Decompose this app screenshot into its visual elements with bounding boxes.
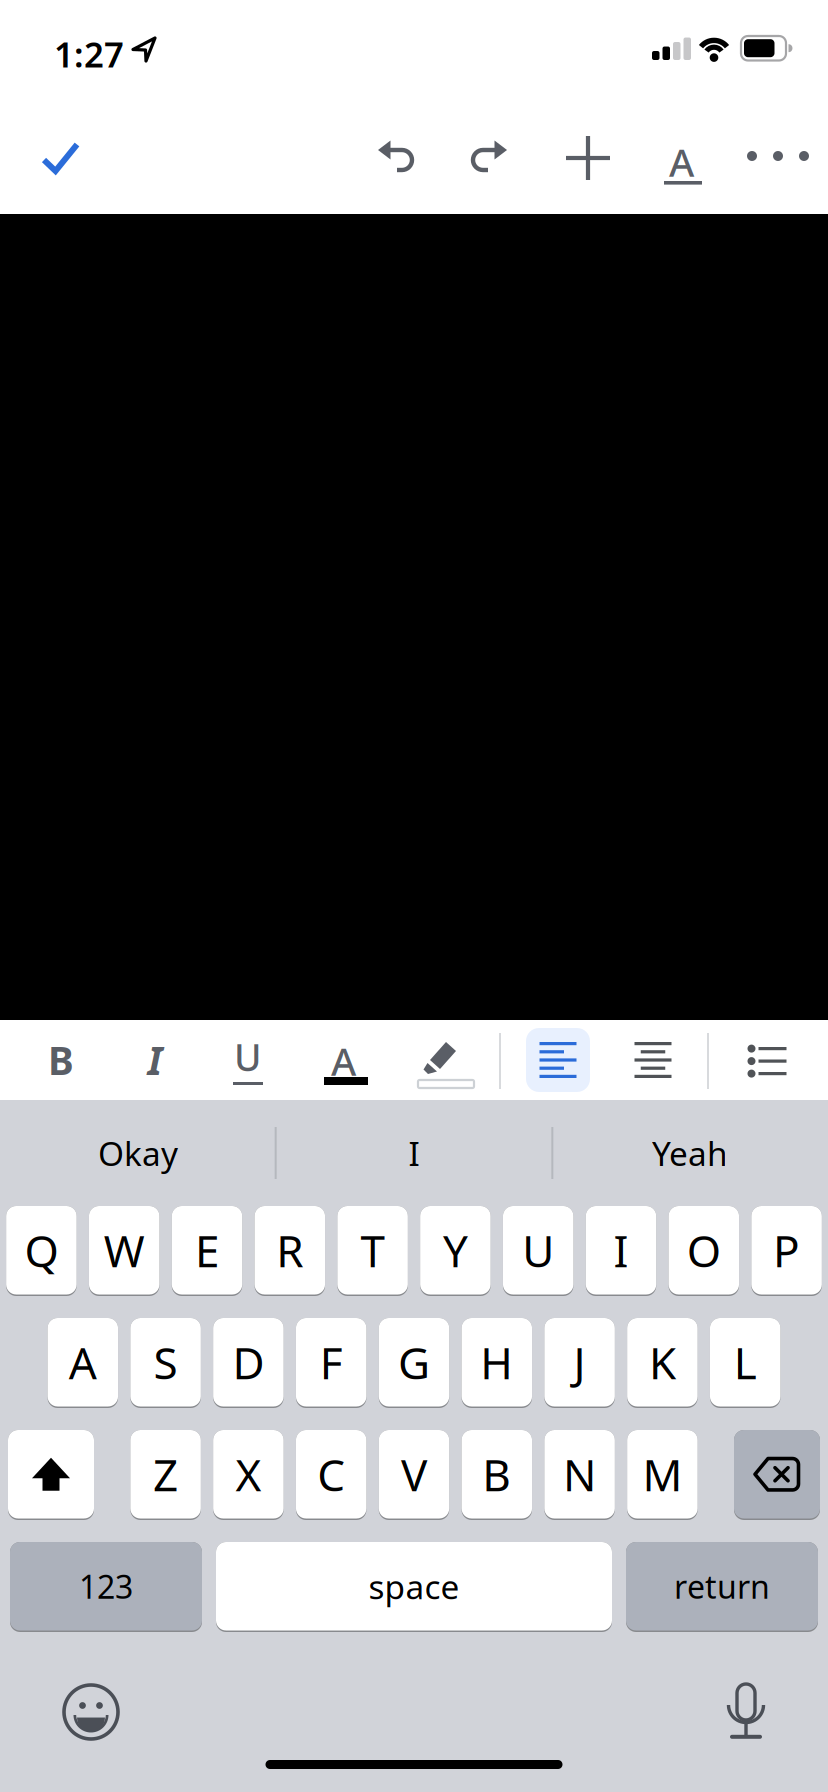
- button[interactable]: O: [668, 1206, 739, 1296]
- button[interactable]: return: [626, 1542, 818, 1632]
- button[interactable]: Text color: [316, 1030, 376, 1090]
- button[interactable]: F: [296, 1318, 366, 1408]
- staticText: Okay: [98, 1131, 178, 1175]
- staticText: B: [482, 1445, 511, 1503]
- button[interactable]: Undo: [372, 134, 420, 182]
- button[interactable]: Emoji: [63, 1684, 119, 1740]
- button[interactable]: Okay: [0, 1105, 276, 1201]
- staticText: 123: [79, 1565, 133, 1607]
- staticText: C: [317, 1445, 345, 1503]
- button[interactable]: K: [627, 1318, 698, 1408]
- staticText: D: [232, 1333, 264, 1391]
- staticText: G: [398, 1333, 430, 1391]
- button[interactable]: D: [213, 1318, 284, 1408]
- staticText: V: [401, 1445, 427, 1503]
- staticText: X: [235, 1445, 261, 1503]
- button[interactable]: Redo: [465, 134, 513, 182]
- button[interactable]: Shift: [8, 1430, 94, 1520]
- staticText: J: [574, 1333, 586, 1391]
- button[interactable]: Done: [36, 134, 84, 182]
- button[interactable]: J: [544, 1318, 615, 1408]
- button[interactable]: I: [276, 1105, 552, 1201]
- button[interactable]: Yeah: [552, 1105, 828, 1201]
- staticText: W: [104, 1221, 145, 1279]
- button[interactable]: C: [296, 1430, 366, 1520]
- button[interactable]: G: [379, 1318, 449, 1408]
- staticText: A: [69, 1333, 97, 1391]
- button[interactable]: Highlight color: [416, 1030, 476, 1090]
- button[interactable]: V: [379, 1430, 449, 1520]
- staticText: K: [649, 1333, 676, 1391]
- staticText: Y: [443, 1221, 468, 1279]
- staticText: U: [234, 1032, 262, 1082]
- staticText: 1:27: [54, 31, 124, 77]
- button[interactable]: S: [130, 1318, 201, 1408]
- button[interactable]: 123: [10, 1542, 202, 1632]
- button[interactable]: space: [216, 1542, 612, 1632]
- staticText: S: [154, 1333, 178, 1391]
- staticText: O: [687, 1221, 721, 1279]
- button[interactable]: Bulleted list: [734, 1030, 794, 1090]
- button[interactable]: Align center: [621, 1028, 685, 1092]
- button[interactable]: X: [213, 1430, 284, 1520]
- button[interactable]: More options: [747, 151, 809, 161]
- staticText: F: [320, 1333, 343, 1391]
- staticText: I: [613, 1221, 628, 1279]
- button[interactable]: Format text: [659, 130, 707, 186]
- staticText: L: [734, 1333, 757, 1391]
- button[interactable]: P: [751, 1206, 822, 1296]
- staticText: B: [48, 1034, 74, 1086]
- staticText: Z: [153, 1445, 178, 1503]
- staticText: R: [276, 1221, 303, 1279]
- staticText: M: [642, 1445, 682, 1503]
- button[interactable]: I: [586, 1206, 656, 1296]
- staticText: return: [674, 1565, 770, 1607]
- staticText: Q: [24, 1221, 58, 1279]
- button[interactable]: A: [48, 1318, 118, 1408]
- button[interactable]: R: [254, 1206, 325, 1296]
- button[interactable]: B: [462, 1430, 532, 1520]
- button[interactable]: W: [89, 1206, 159, 1296]
- staticText: E: [195, 1221, 219, 1279]
- button[interactable]: Align left: [526, 1028, 590, 1092]
- button[interactable]: Z: [130, 1430, 201, 1520]
- button[interactable]: Dictate: [726, 1683, 766, 1741]
- button[interactable]: T: [337, 1206, 408, 1296]
- staticText: I: [147, 1034, 162, 1086]
- button[interactable]: Q: [6, 1206, 77, 1296]
- button[interactable]: Delete: [734, 1430, 820, 1520]
- button[interactable]: E: [172, 1206, 242, 1296]
- staticText: Yeah: [652, 1131, 728, 1175]
- button[interactable]: M: [627, 1430, 698, 1520]
- staticText: T: [361, 1221, 385, 1279]
- button[interactable]: Bold: [31, 1030, 91, 1090]
- button[interactable]: N: [544, 1430, 615, 1520]
- button[interactable]: Italic: [125, 1030, 185, 1090]
- button[interactable]: Underline: [218, 1030, 278, 1090]
- staticText: space: [368, 1564, 459, 1608]
- staticText: H: [480, 1333, 513, 1391]
- staticText: A: [331, 1035, 356, 1086]
- button[interactable]: L: [710, 1318, 780, 1408]
- button[interactable]: H: [462, 1318, 532, 1408]
- button[interactable]: Insert: [564, 134, 612, 182]
- button[interactable]: U: [503, 1206, 573, 1296]
- staticText: A: [669, 136, 694, 187]
- staticText: P: [773, 1221, 800, 1279]
- staticText: N: [563, 1445, 596, 1503]
- button[interactable]: Y: [420, 1206, 491, 1296]
- staticText: U: [522, 1221, 554, 1279]
- staticText: I: [408, 1131, 419, 1175]
